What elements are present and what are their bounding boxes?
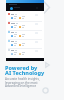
button[interactable] (6, 31, 44, 39)
button[interactable] (6, 40, 44, 48)
other: decoration (43, 1, 50, 14)
button[interactable] (6, 22, 44, 30)
button[interactable] (6, 13, 44, 21)
staticText: Powered by AI Technology (5, 64, 45, 77)
staticText: Accurate health insights, leveraging on … (5, 77, 40, 87)
button[interactable] (6, 49, 44, 57)
